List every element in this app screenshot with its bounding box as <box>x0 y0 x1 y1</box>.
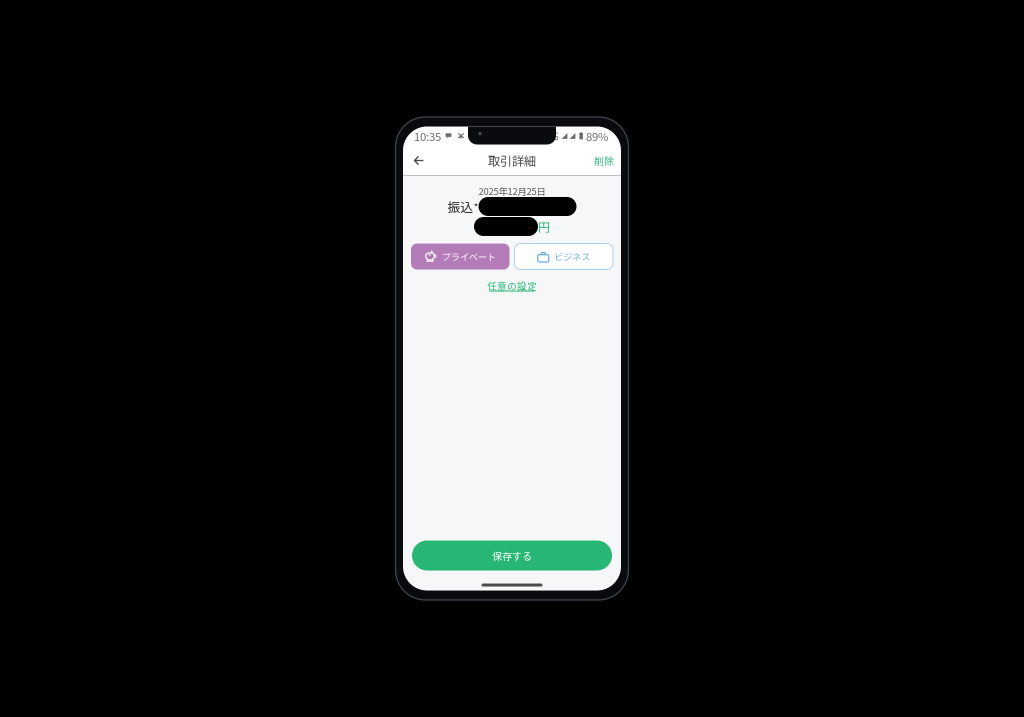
staticText: プライベート <box>442 250 496 263</box>
button[interactable]: 保存する <box>412 540 612 570</box>
staticText: 10:35 <box>414 128 441 144</box>
button[interactable]: 任意の設定 <box>487 280 537 291</box>
staticText: 振込 <box>447 197 473 216</box>
button[interactable]: ビジネス <box>514 243 613 269</box>
button[interactable]: 戻る <box>407 146 431 175</box>
staticText: 任意の設定 <box>487 278 537 292</box>
staticText: 89% <box>586 128 608 144</box>
button[interactable]: プライベート <box>411 243 509 269</box>
staticText: 円 <box>538 218 550 235</box>
staticText: 保存する <box>492 548 532 563</box>
staticText: 取引詳細 <box>488 152 536 169</box>
staticText: 削除 <box>594 153 614 167</box>
staticText: G <box>552 129 559 143</box>
staticText: * <box>473 199 478 214</box>
button[interactable]: 削除 <box>592 146 616 175</box>
staticText: 2025年12月25日 <box>478 184 545 198</box>
staticText: ビジネス <box>554 250 590 263</box>
